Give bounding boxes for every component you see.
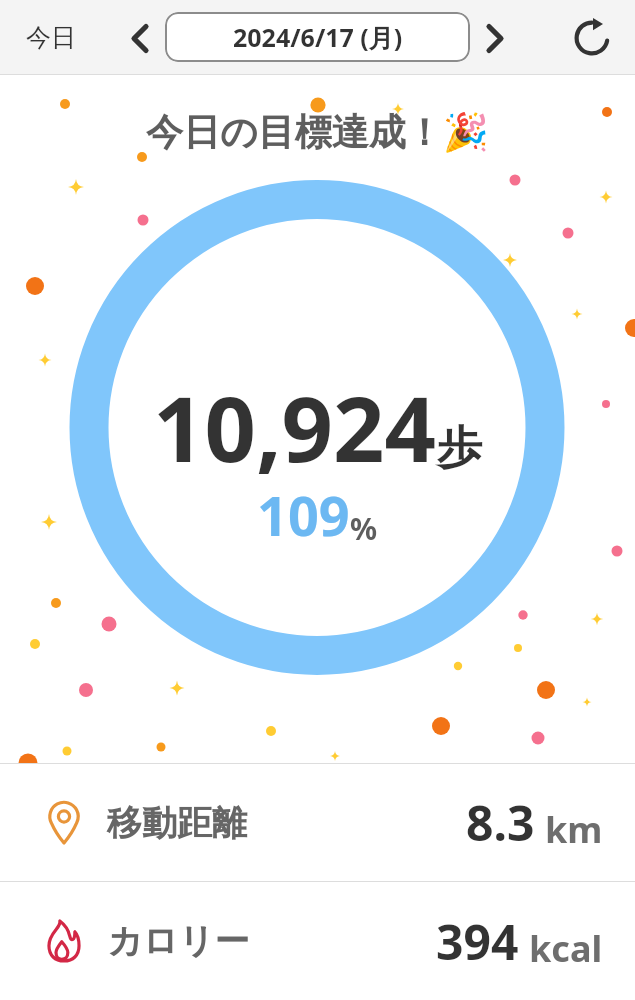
button[interactable]: カロリー [0, 882, 635, 1000]
staticText: 2024/6/17 (月) [233, 20, 403, 54]
staticText: カロリー [107, 919, 250, 963]
staticText: 10,924 [153, 366, 437, 489]
button[interactable]: Refresh [566, 0, 618, 75]
staticText: 今日の目標達成！🎉 [146, 109, 489, 156]
staticText: 109 [257, 478, 350, 552]
button[interactable]: Next day [472, 0, 518, 75]
staticText: 8.3 [466, 790, 535, 855]
button[interactable]: Previous day [117, 0, 163, 75]
button[interactable]: 今日 [14, 0, 88, 75]
staticText: % [350, 508, 378, 549]
staticText: 移動距離 [107, 801, 247, 845]
button[interactable]: 移動距離 [0, 764, 635, 881]
staticText: 今日 [26, 22, 76, 53]
staticText: km [545, 805, 603, 854]
staticText: 394 [436, 909, 519, 974]
button[interactable]: 2024/6/17 (月) [165, 12, 470, 62]
staticText: kcal [529, 924, 603, 973]
staticText: 歩 [437, 420, 482, 477]
